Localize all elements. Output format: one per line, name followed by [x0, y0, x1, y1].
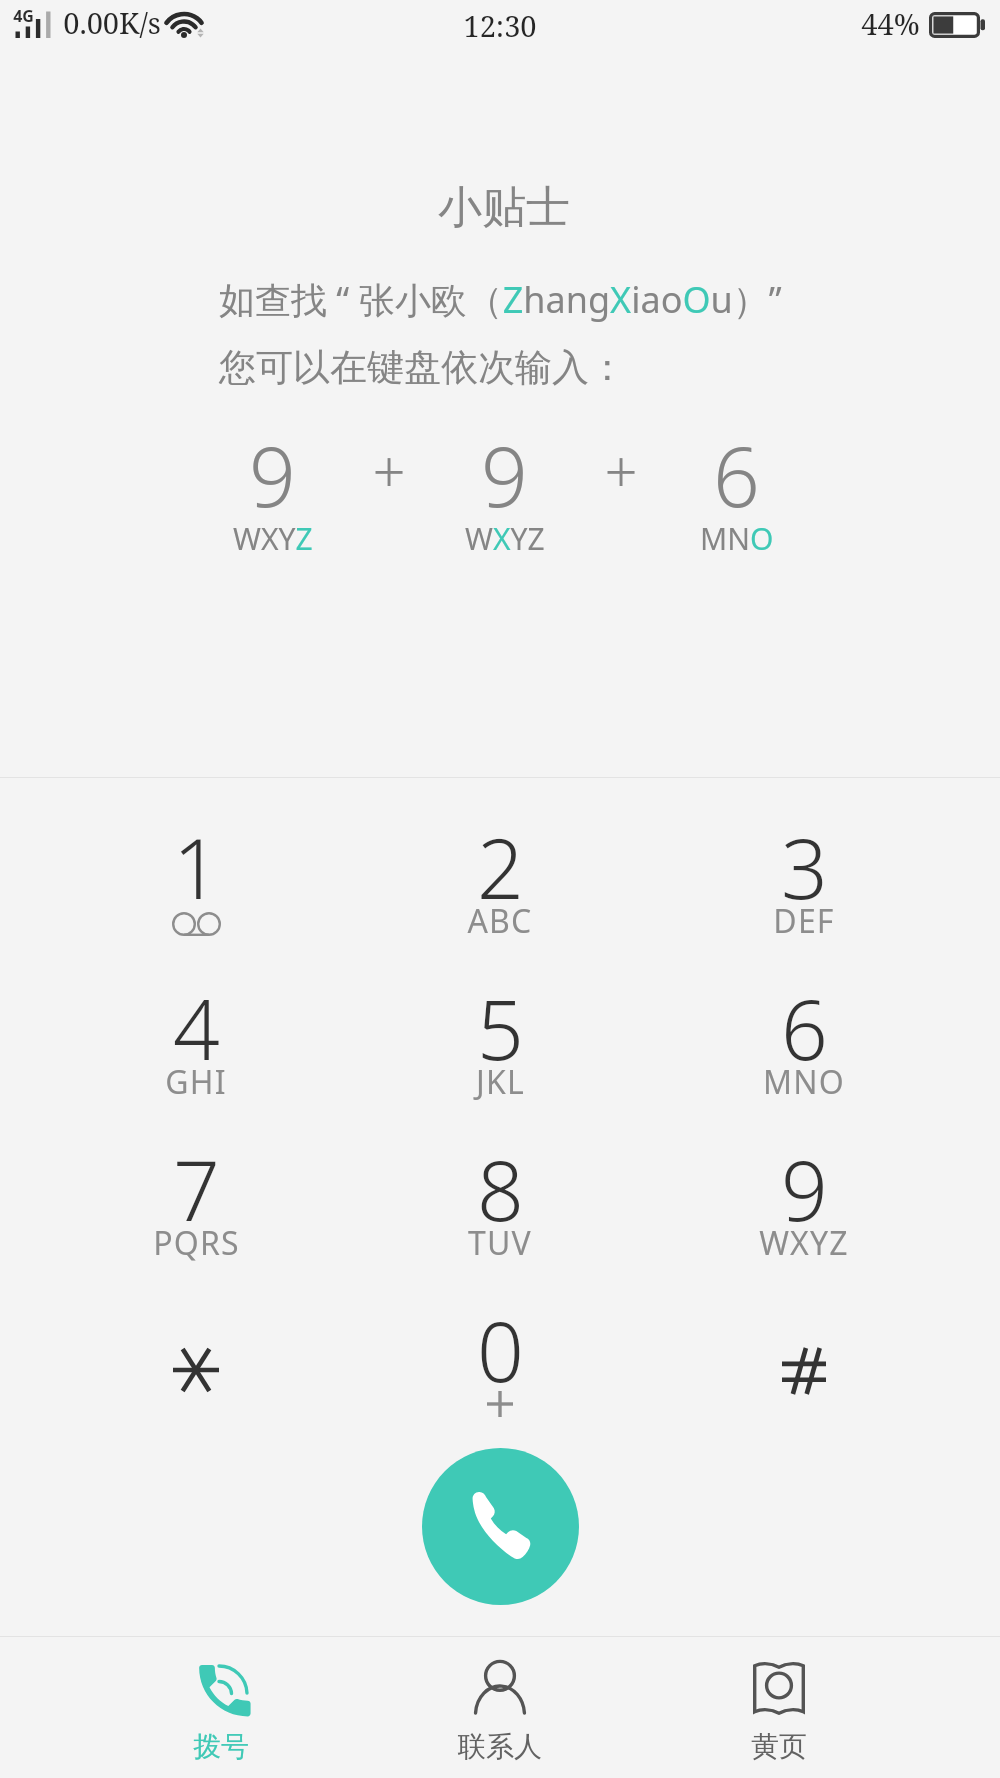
button[interactable]: 4 [44, 968, 348, 1129]
staticText: 4G [13, 5, 34, 27]
button[interactable]: Pound [652, 1290, 956, 1451]
button[interactable]: 7 [44, 1129, 348, 1290]
button[interactable]: 8 [348, 1129, 652, 1290]
staticText: JKL [476, 1060, 525, 1104]
staticText: 您可以在键盘依次输入： [219, 344, 626, 391]
staticText: 4 [173, 972, 220, 1084]
staticText: ABC [467, 899, 533, 943]
button[interactable]: 1 [44, 807, 348, 968]
staticText: 如查找 “ 张小欧（ZhangXiaoOu）” [219, 275, 782, 324]
staticText: TUV [468, 1221, 532, 1265]
staticText: 9 [481, 419, 528, 531]
staticText: 8 [477, 1133, 524, 1245]
staticText: MNO [763, 1060, 845, 1104]
button[interactable]: 2 [348, 807, 652, 968]
staticText: 拨号 [193, 1729, 249, 1764]
button[interactable]: 5 [348, 968, 652, 1129]
staticText: + [372, 431, 406, 510]
staticText: 12:30 [463, 6, 537, 45]
staticText: 2 [477, 811, 524, 923]
staticText: 6 [713, 419, 760, 531]
staticText: 9 [249, 419, 296, 531]
staticText: 黄页 [751, 1729, 807, 1764]
staticText: WXYZ [759, 1221, 849, 1265]
staticText: 1 [173, 811, 220, 923]
staticText: 44% [861, 4, 920, 43]
button[interactable]: 9 [652, 1129, 956, 1290]
staticText: 联系人 [458, 1729, 542, 1764]
button[interactable]: 0 [348, 1290, 652, 1451]
staticText: 3 [781, 811, 828, 923]
staticText: 小贴士 [438, 180, 570, 235]
button[interactable]: Call [422, 1448, 579, 1605]
staticText: 9 [781, 1133, 828, 1245]
staticText: WXYZ [465, 518, 545, 559]
staticText: PQRS [153, 1221, 240, 1265]
button[interactable]: 3 [652, 807, 956, 968]
staticText: 7 [173, 1133, 220, 1245]
staticText: + [604, 431, 638, 510]
staticText: MNO [700, 518, 774, 559]
staticText: 0 [477, 1294, 524, 1406]
staticText: 5 [477, 972, 524, 1084]
button[interactable]: 6 [652, 968, 956, 1129]
staticText: 0.00K/s [63, 3, 161, 42]
staticText: GHI [165, 1060, 227, 1104]
button[interactable]: 联系人 [360, 1637, 639, 1778]
button[interactable]: 黄页 [639, 1637, 918, 1778]
button[interactable]: 拨号 [82, 1637, 360, 1778]
staticText: 6 [781, 972, 828, 1084]
button[interactable]: Star [44, 1290, 348, 1451]
staticText: WXYZ [233, 518, 313, 559]
staticText: DEF [773, 899, 835, 943]
